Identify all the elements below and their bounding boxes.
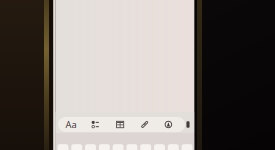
button[interactable]: Attach file bbox=[133, 117, 157, 132]
button[interactable]: Hide keyboard bbox=[183, 117, 193, 132]
button[interactable]: Aa bbox=[59, 117, 83, 132]
button[interactable]: Checklist bbox=[83, 117, 107, 132]
staticText: Aa bbox=[66, 118, 77, 131]
button[interactable]: Table bbox=[108, 117, 132, 132]
button[interactable]: Markup bbox=[156, 117, 180, 132]
